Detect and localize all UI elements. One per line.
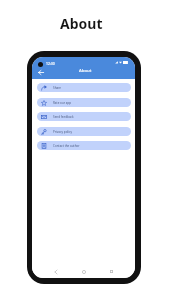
staticText: Contact the author — [53, 144, 80, 148]
staticText: Send feedback — [53, 115, 74, 119]
button[interactable]: Send feedback — [37, 112, 131, 121]
staticText: Share — [53, 86, 62, 90]
button[interactable]: Privacy policy — [37, 127, 131, 136]
staticText: About — [60, 14, 103, 33]
button[interactable]: Back — [35, 66, 47, 78]
staticText: Privacy policy — [53, 130, 72, 134]
button[interactable]: Rate our app — [37, 98, 131, 107]
staticText: 12:30 — [46, 61, 55, 66]
button[interactable]: Share — [37, 83, 131, 92]
button[interactable]: Contact the author — [37, 141, 131, 150]
staticText: About — [79, 67, 92, 73]
button[interactable]: Back — [51, 267, 60, 276]
staticText: Rate our app — [53, 101, 72, 105]
button[interactable]: Home — [79, 267, 88, 276]
button[interactable]: Recents — [107, 267, 116, 276]
